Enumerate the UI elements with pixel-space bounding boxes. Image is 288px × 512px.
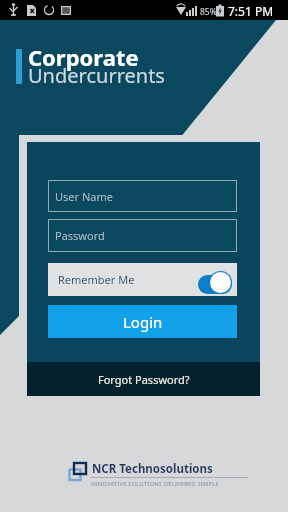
- staticText: NCR Technosolutions: [92, 461, 213, 477]
- staticText: Login: [123, 312, 163, 332]
- button[interactable]: Forgot Password?: [27, 362, 260, 396]
- button[interactable]: Password: [48, 219, 237, 252]
- staticText: Undercurrents: [28, 62, 165, 89]
- staticText: Forgot Password?: [98, 372, 190, 387]
- staticText: Corporate: [28, 42, 139, 72]
- staticText: Remember Me: [58, 272, 135, 287]
- staticText: 7:51 PM: [228, 3, 274, 19]
- button[interactable]: Remember Me: [48, 263, 237, 296]
- staticText: User Name: [55, 189, 113, 204]
- button[interactable]: Login: [48, 305, 237, 338]
- staticText: INNOVATIVE SOLUTIONS DELIVERED SIMPLE: [91, 480, 219, 488]
- button[interactable]: User Name: [48, 180, 237, 212]
- staticText: Password: [55, 228, 105, 243]
- staticText: 85%: [200, 6, 217, 18]
